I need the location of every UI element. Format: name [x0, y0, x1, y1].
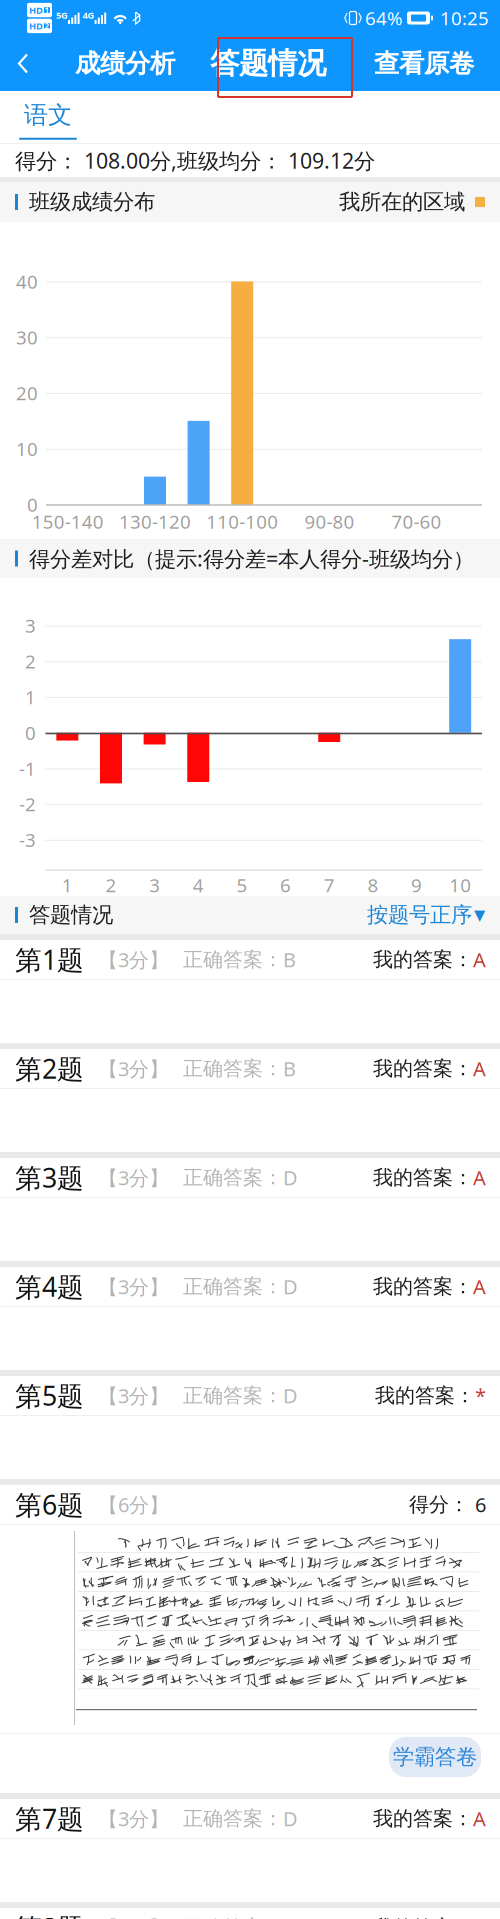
staticText: 1 [25, 685, 36, 709]
staticText: 【3分】 [98, 1273, 169, 1300]
staticText: 我的答案： [373, 1165, 473, 1190]
staticText: HD [29, 4, 43, 16]
button[interactable]: 第7题 [0, 1793, 500, 1902]
staticText: 7 [324, 873, 335, 897]
staticText: 得分差对比（提示:得分差=本人得分-班级均分） [29, 544, 474, 573]
button[interactable]: 成绩分析 [75, 36, 175, 91]
staticText: 第5题 [15, 1378, 84, 1413]
staticText: 正确答案： [183, 947, 283, 972]
button[interactable]: 第2题 [0, 1043, 500, 1152]
staticText: * [475, 1382, 486, 1409]
staticText: 我的答案： [373, 1274, 473, 1299]
staticText: 40 [16, 269, 38, 294]
staticText: 【3分】 [98, 946, 169, 973]
staticText: 答题情况 [210, 45, 326, 81]
staticText: A [473, 1273, 486, 1300]
staticText: 我的答案： [375, 1383, 475, 1408]
staticText: 5G [56, 9, 68, 21]
staticText: 我的答案： [373, 1915, 473, 1919]
staticText: 150-140 [32, 509, 104, 534]
staticText: 第7题 [15, 1801, 84, 1836]
staticText: 【3分】 [98, 1805, 169, 1832]
staticText: 10 [449, 873, 471, 897]
staticText: 我的答案： [373, 1056, 473, 1081]
staticText: 3 [149, 873, 160, 897]
staticText: 10 [16, 436, 38, 461]
staticText: 查看原卷 [374, 48, 474, 79]
staticText: 0 [25, 720, 36, 745]
staticText: 班级成绩分布 [29, 189, 155, 215]
staticText: 110-100 [206, 509, 278, 534]
staticText: 【6分】 [98, 1491, 169, 1518]
staticText: 【6分】 [98, 1914, 169, 1919]
staticText: 8 [367, 873, 378, 897]
staticText: 6 [475, 1491, 486, 1518]
staticText: B [283, 946, 296, 973]
staticText: 5 [236, 873, 247, 897]
staticText: 30 [16, 325, 38, 350]
staticText: 得分： [409, 1492, 475, 1517]
staticText: 按题号正序 [367, 902, 472, 928]
staticText: A [473, 1805, 486, 1832]
button[interactable]: 第6题 [0, 1485, 500, 1524]
staticText: 我的答案： [373, 1806, 473, 1831]
staticText: 【3分】 [98, 1164, 169, 1191]
staticText: 得分： 108.00分,班级均分： 109.12分 [15, 146, 375, 175]
staticText: 10:25 [440, 6, 489, 30]
staticText: 20 [16, 381, 38, 405]
staticText: 语文 [24, 100, 72, 130]
staticText: 【3分】 [98, 1055, 169, 1082]
staticText: 正确答案： [183, 1274, 283, 1299]
button[interactable]: 语文 [0, 91, 96, 143]
staticText: 第6题 [15, 1487, 84, 1522]
staticText: A [473, 1055, 486, 1082]
staticText: 4 [193, 873, 204, 897]
staticText: 130-120 [119, 509, 191, 534]
staticText: 6 [280, 873, 291, 897]
button[interactable]: 第3题 [0, 1152, 500, 1261]
button[interactable]: 查看原卷 [374, 36, 474, 91]
staticText: 正确答案： [183, 1165, 283, 1190]
staticText: ▼ [474, 907, 485, 923]
staticText: -1 [19, 756, 36, 781]
staticText: 9 [411, 873, 422, 897]
staticText: 第8题 [15, 1910, 84, 1919]
staticText: D [283, 1805, 298, 1832]
staticText: -3 [19, 827, 36, 852]
staticText: 我所在的区域 [339, 189, 465, 215]
button[interactable]: 答题情况 [208, 36, 328, 91]
staticText: 2 [105, 873, 116, 897]
button[interactable]: 第5题 [0, 1370, 500, 1479]
staticText: 2 [25, 649, 36, 674]
staticText: 正确答案： [183, 1806, 283, 1831]
staticText: 70-60 [392, 509, 442, 534]
button[interactable]: 第4题 [0, 1261, 500, 1370]
staticText: 4G [83, 9, 95, 21]
staticText: D [283, 1164, 298, 1191]
staticText: 正确答案： [183, 1056, 283, 1081]
staticText: D [283, 1273, 298, 1300]
button[interactable]: 返回 [0, 36, 46, 91]
staticText: 第3题 [15, 1160, 84, 1195]
staticText: 第4题 [15, 1269, 84, 1304]
staticText: B [283, 1055, 296, 1082]
staticText: 64% [365, 6, 403, 30]
staticText: 3 [25, 613, 36, 638]
staticText: 学霸答卷 [393, 1744, 477, 1770]
staticText: 成绩分析 [75, 48, 175, 79]
staticText: 2 [44, 21, 49, 31]
button[interactable]: 第1题 [0, 934, 500, 1043]
staticText: -2 [19, 792, 36, 816]
staticText: 第2题 [15, 1051, 84, 1086]
staticText: 我的答案： [373, 947, 473, 972]
button[interactable]: 按题号正序 [367, 896, 485, 934]
staticText: 1 [62, 873, 73, 897]
button[interactable]: 学霸答卷 [389, 1737, 481, 1777]
button[interactable]: 第8题 [0, 1902, 500, 1919]
staticText: 0 [27, 492, 38, 517]
staticText: 正确答案： [183, 1915, 283, 1919]
staticText: 【3分】 [98, 1382, 169, 1409]
staticText: 答题情况 [29, 902, 113, 928]
staticText: HD [29, 20, 43, 32]
